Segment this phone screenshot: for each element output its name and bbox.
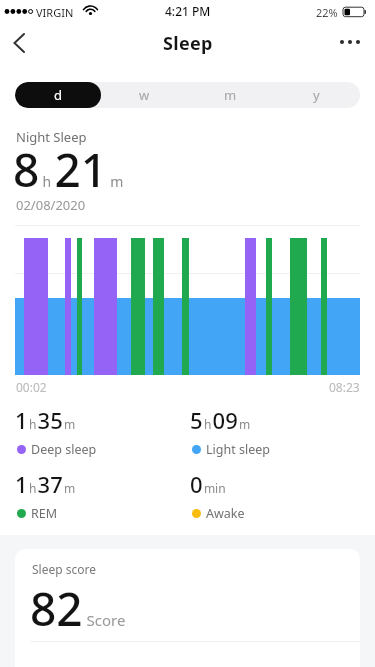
staticText: 1 h 37 m (15, 469, 77, 499)
button[interactable]: Sleep score (15, 549, 360, 667)
staticText: VIRGIN (36, 5, 74, 20)
staticText: m (224, 86, 237, 104)
staticText: 5 h 09 m (190, 405, 252, 435)
staticText: Light sleep (206, 441, 270, 458)
staticText: 4:21 PM (165, 3, 211, 19)
button[interactable]: y (273, 82, 359, 108)
staticText: Sleep (163, 31, 213, 56)
staticText: Night Sleep (16, 128, 87, 146)
button[interactable] (0, 24, 38, 62)
staticText: d (54, 86, 62, 104)
staticText: 8 h 21 m (13, 138, 124, 201)
staticText: Awake (206, 505, 245, 522)
button[interactable]: m (187, 82, 273, 108)
staticText: Sleep score (32, 561, 96, 577)
staticText: 1 h 35 m (15, 405, 77, 435)
staticText: Deep sleep (31, 441, 97, 458)
staticText: 82 Score (30, 577, 126, 640)
button[interactable] (326, 24, 370, 62)
staticText: REM (31, 505, 58, 522)
staticText: 22% (316, 5, 338, 20)
staticText: 08:23 (329, 379, 360, 395)
staticText: y (313, 86, 320, 104)
staticText: 0 min (190, 469, 227, 499)
staticText: w (139, 86, 150, 104)
staticText: 02/08/2020 (16, 196, 86, 214)
button[interactable]: w (101, 82, 187, 108)
button[interactable]: d (15, 82, 101, 108)
staticText: 00:02 (16, 379, 47, 395)
